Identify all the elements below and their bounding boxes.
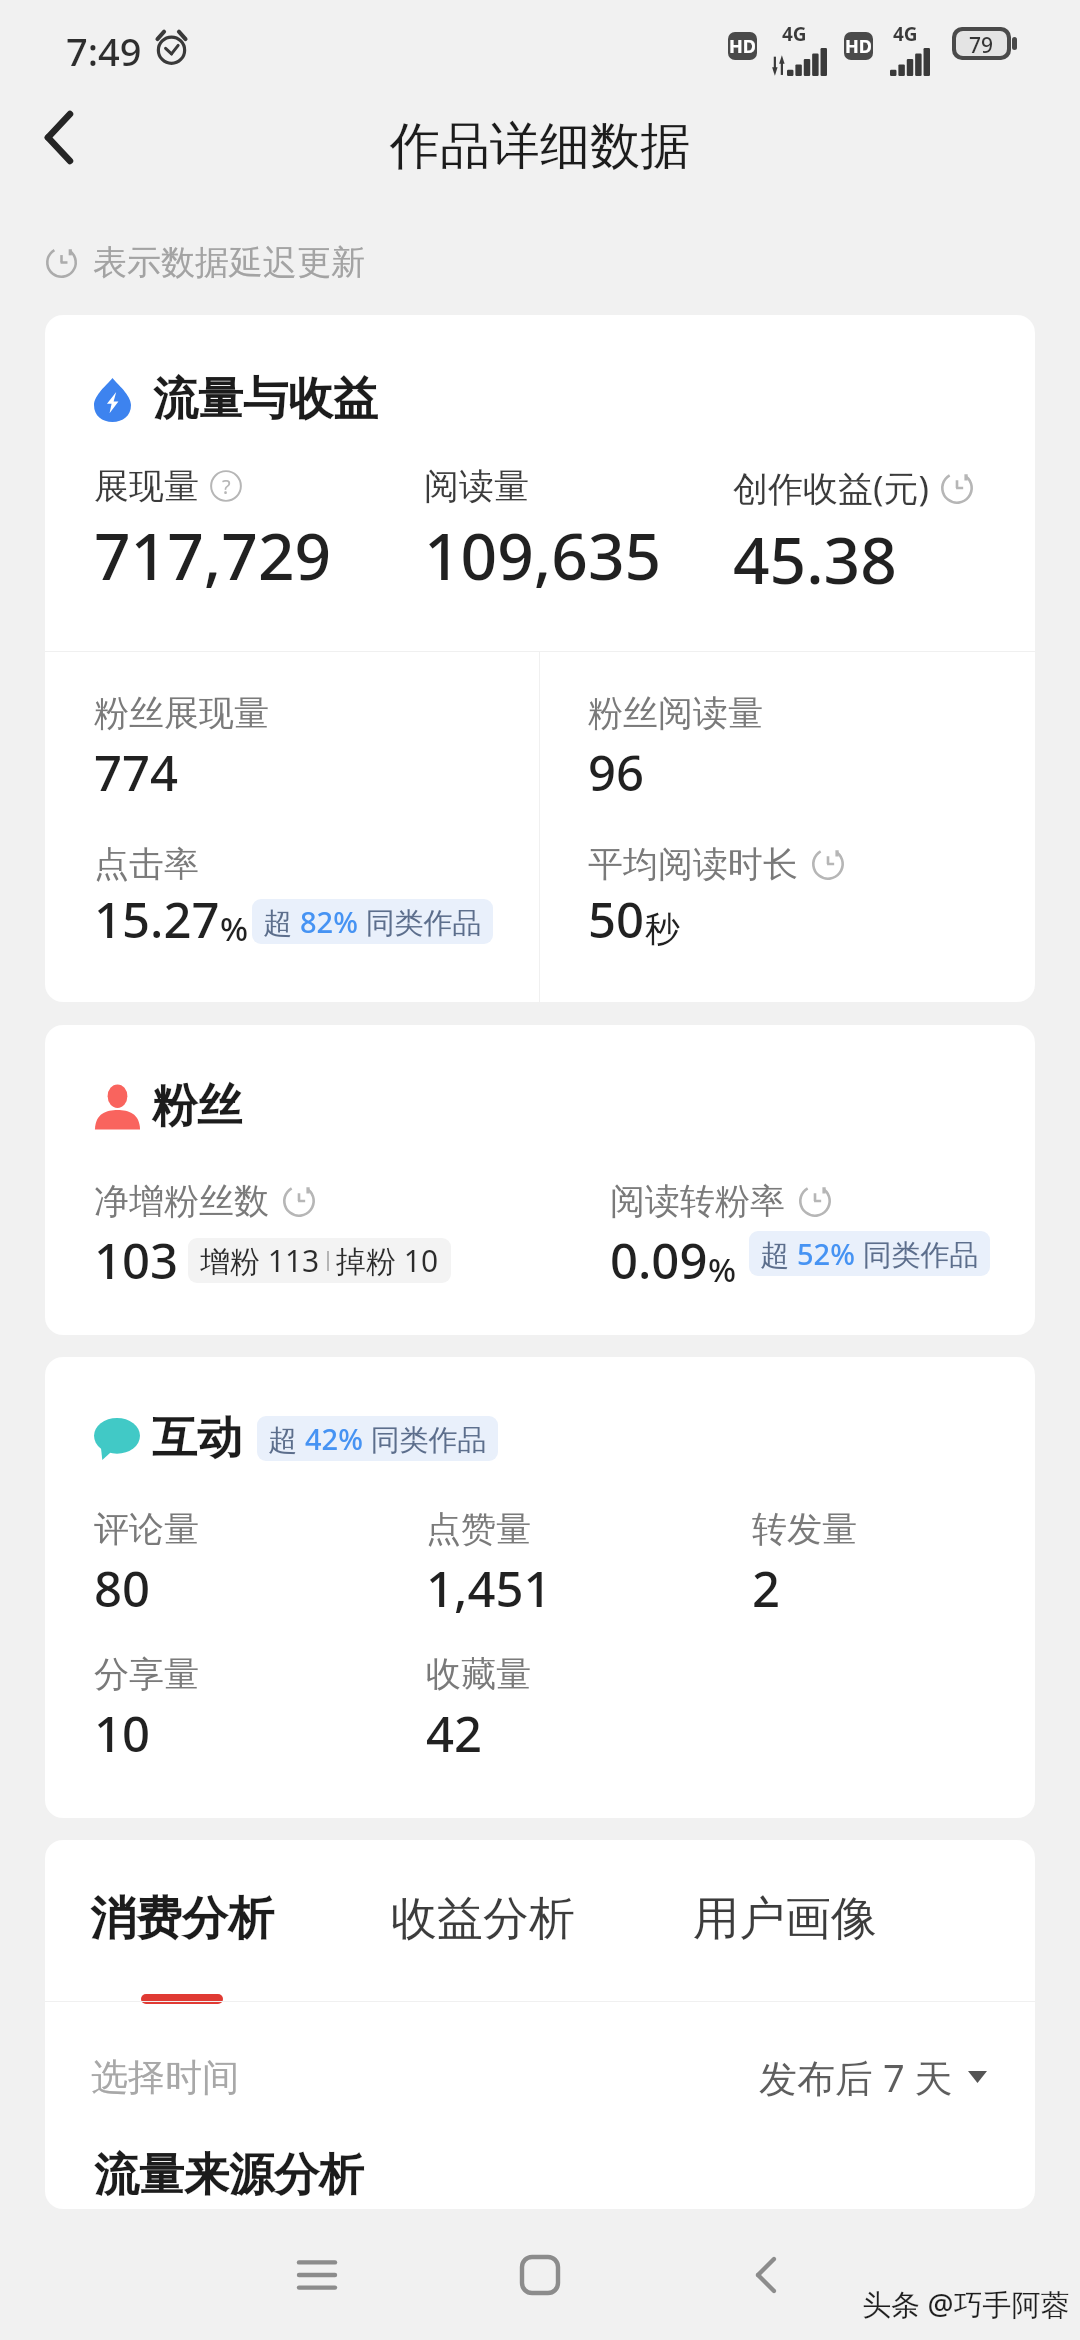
staticText: 创作收益(元) (733, 464, 930, 512)
staticText: 超 (760, 1234, 797, 1274)
staticText: 展现量 (94, 464, 199, 508)
button[interactable]: Recents (257, 2215, 377, 2335)
button[interactable] (752, 1507, 857, 1622)
staticText: 秒 (645, 907, 680, 951)
button[interactable] (94, 1652, 426, 1767)
staticText: 103 (94, 1227, 179, 1294)
staticText: 流量与收益 (153, 371, 378, 428)
staticText: 转发量 (752, 1507, 857, 1551)
staticText: 42 (426, 1700, 483, 1767)
staticText: 同类作品 (855, 1234, 979, 1274)
button[interactable]: 用户画像 (634, 1890, 936, 2004)
button[interactable]: Back (13, 91, 105, 183)
staticText: 15.27 (94, 886, 220, 953)
staticText: 增粉 113 (200, 1240, 320, 1281)
staticText: 96 (588, 739, 645, 806)
button[interactable] (94, 691, 269, 806)
staticText: HD (845, 34, 872, 59)
staticText: 粉丝 (152, 1078, 242, 1135)
staticText: 流量来源分析 (94, 2147, 364, 2204)
staticText: 消费分析 (90, 1890, 274, 1948)
staticText: 超 (263, 902, 300, 942)
staticText: 超 (268, 1419, 305, 1459)
staticText: ? (222, 473, 231, 500)
staticText: 阅读转粉率 (610, 1179, 785, 1223)
button[interactable]: Back (706, 2215, 826, 2335)
staticText: 用户画像 (693, 1890, 877, 1948)
staticText: 粉丝阅读量 (588, 691, 763, 735)
button[interactable]: 收益分析 (332, 1890, 634, 2004)
staticText: 粉丝展现量 (94, 691, 269, 735)
staticText: 774 (94, 739, 179, 806)
staticText: 7:49 (66, 25, 142, 77)
staticText: 82% (300, 902, 358, 941)
staticText: 作品详细数据 (390, 115, 690, 178)
staticText: % (220, 906, 249, 951)
staticText: 2 (752, 1555, 781, 1622)
staticText: 50 (588, 886, 645, 953)
staticText: 4G (782, 21, 807, 47)
button[interactable]: Home (480, 2215, 600, 2335)
staticText: 阅读量 (424, 464, 529, 508)
staticText: 109,635 (424, 512, 662, 599)
staticText: 点击率 (94, 842, 199, 886)
staticText: 10 (94, 1700, 151, 1767)
staticText: 4G (893, 21, 918, 47)
staticText: 80 (94, 1555, 151, 1622)
staticText: 选择时间 (91, 2054, 239, 2101)
button[interactable]: 发布后 7 天 (759, 2051, 987, 2103)
staticText: 互动 (152, 1410, 242, 1467)
staticText: 发布后 7 天 (759, 2051, 953, 2103)
staticText: HD (729, 34, 756, 59)
staticText: 1,451 (426, 1555, 552, 1622)
staticText: 0.09 (610, 1227, 708, 1294)
staticText: 收藏量 (426, 1652, 531, 1696)
staticText: 收益分析 (391, 1890, 575, 1948)
button[interactable]: 消费分析 (45, 1890, 333, 2004)
staticText: 717,729 (94, 512, 332, 599)
staticText: 点赞量 (426, 1507, 531, 1551)
staticText: 45.38 (733, 516, 897, 603)
other: What is 展现量 (210, 470, 242, 502)
staticText: 同类作品 (358, 902, 482, 942)
button[interactable] (424, 464, 733, 599)
staticText: 同类作品 (363, 1419, 487, 1459)
button[interactable] (426, 1652, 531, 1767)
button[interactable] (94, 1507, 426, 1622)
button[interactable] (733, 464, 973, 603)
staticText: 79 (969, 31, 994, 56)
staticText: 表示数据延迟更新 (93, 241, 365, 284)
staticText: % (708, 1247, 737, 1292)
button[interactable] (588, 691, 763, 806)
staticText: 掉粉 10 (336, 1240, 439, 1281)
staticText: 分享量 (94, 1652, 199, 1696)
button[interactable] (426, 1507, 752, 1622)
staticText: 平均阅读时长 (588, 842, 798, 886)
staticText: 净增粉丝数 (94, 1179, 269, 1223)
button[interactable] (94, 464, 424, 599)
staticText: 头条 @巧手阿蓉 (862, 2284, 1070, 2324)
staticText: 评论量 (94, 1507, 199, 1551)
staticText: 52% (797, 1234, 855, 1273)
staticText: 42% (305, 1419, 363, 1458)
